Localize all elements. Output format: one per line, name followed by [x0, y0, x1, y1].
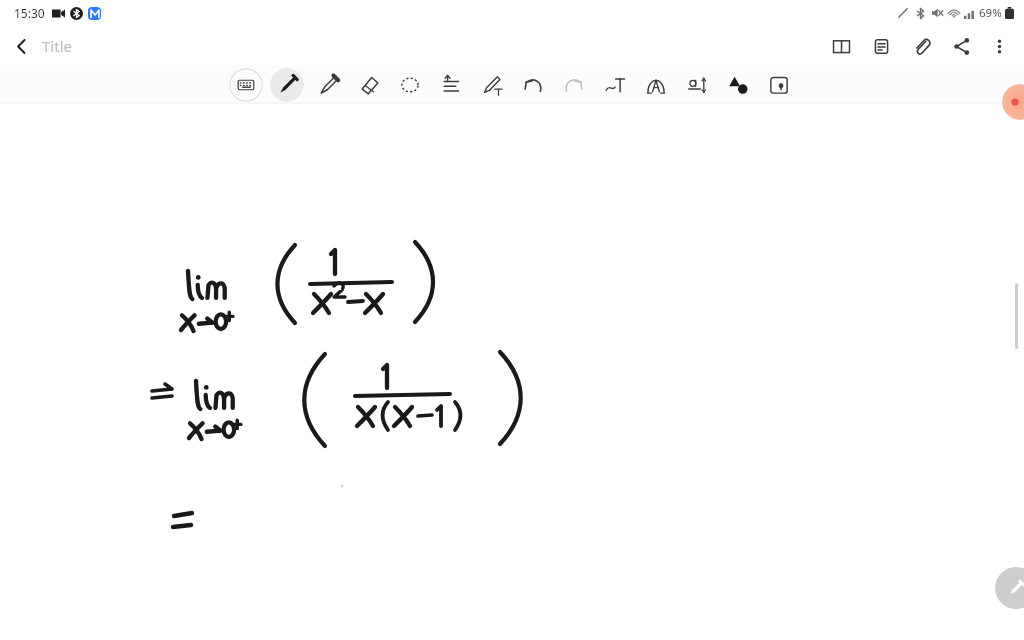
button[interactable]: Font style	[639, 68, 673, 102]
button[interactable]: Highlighter	[311, 68, 345, 102]
button[interactable]: Redo	[557, 68, 591, 102]
button[interactable]: Edit	[995, 567, 1024, 609]
button[interactable]: Share	[944, 29, 978, 63]
button[interactable]: Shapes	[721, 68, 755, 102]
button[interactable]: Pen	[270, 68, 304, 102]
button[interactable]: Convert handwriting	[475, 68, 509, 102]
button[interactable]: Align	[434, 68, 468, 102]
button[interactable]: Eraser	[352, 68, 386, 102]
button[interactable]: Keyboard	[229, 68, 263, 102]
staticText: 15:30	[14, 5, 45, 21]
staticText: Title	[42, 36, 72, 56]
button[interactable]: Pen colour	[1002, 84, 1024, 120]
button[interactable]: Attach	[904, 29, 938, 63]
staticText: 69%	[979, 5, 1002, 21]
button[interactable]: Selection	[393, 68, 427, 102]
button[interactable]: Reading view	[824, 29, 858, 63]
button[interactable]: Text recognition	[598, 68, 632, 102]
button[interactable]: Undo	[516, 68, 550, 102]
button[interactable]: Text size	[680, 68, 714, 102]
button[interactable]: Lock	[762, 68, 796, 102]
button[interactable]: Title	[42, 36, 72, 56]
button[interactable]: More options	[982, 29, 1016, 63]
button[interactable]: Page list	[864, 29, 898, 63]
button[interactable]: Back	[0, 26, 42, 66]
